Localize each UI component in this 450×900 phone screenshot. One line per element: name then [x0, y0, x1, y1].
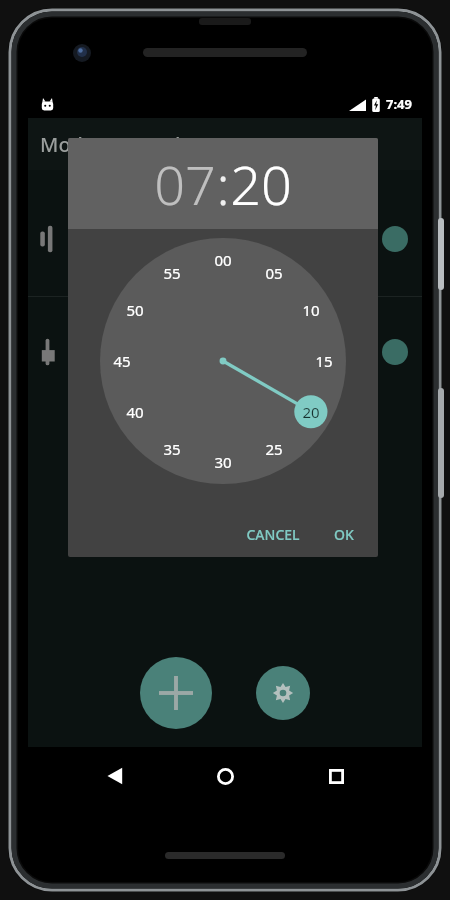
staticText: 05 [265, 263, 283, 283]
button[interactable] [28, 184, 422, 294]
button[interactable]: 00 [100, 238, 346, 484]
staticText: 40 [126, 402, 144, 422]
staticText: 20 [302, 402, 320, 422]
staticText: 10 [302, 300, 320, 320]
button[interactable]: 20 [230, 147, 292, 221]
button[interactable]: Back [91, 752, 139, 800]
button[interactable]: Settings [256, 666, 310, 720]
button[interactable]: OK [324, 519, 364, 550]
staticText: 35 [163, 439, 181, 459]
button[interactable]: Home [201, 752, 249, 800]
button[interactable]: CANCEL [236, 519, 310, 550]
staticText: 45 [113, 351, 131, 371]
button[interactable]: Recents [312, 752, 360, 800]
button[interactable]: 07 [154, 147, 216, 221]
button[interactable] [28, 297, 422, 407]
staticText: 15 [315, 351, 333, 371]
staticText: : [216, 147, 230, 221]
staticText: 50 [126, 300, 144, 320]
staticText: CANCEL [246, 525, 300, 544]
button[interactable]: Add task [140, 657, 212, 729]
staticText: OK [334, 525, 354, 544]
staticText: 7:49 [386, 95, 412, 113]
staticText: ModeBot - Tasks [40, 131, 196, 158]
staticText: 55 [163, 263, 181, 283]
staticText: 00 [214, 250, 232, 270]
staticText: 25 [265, 439, 283, 459]
staticText: 30 [214, 452, 232, 472]
